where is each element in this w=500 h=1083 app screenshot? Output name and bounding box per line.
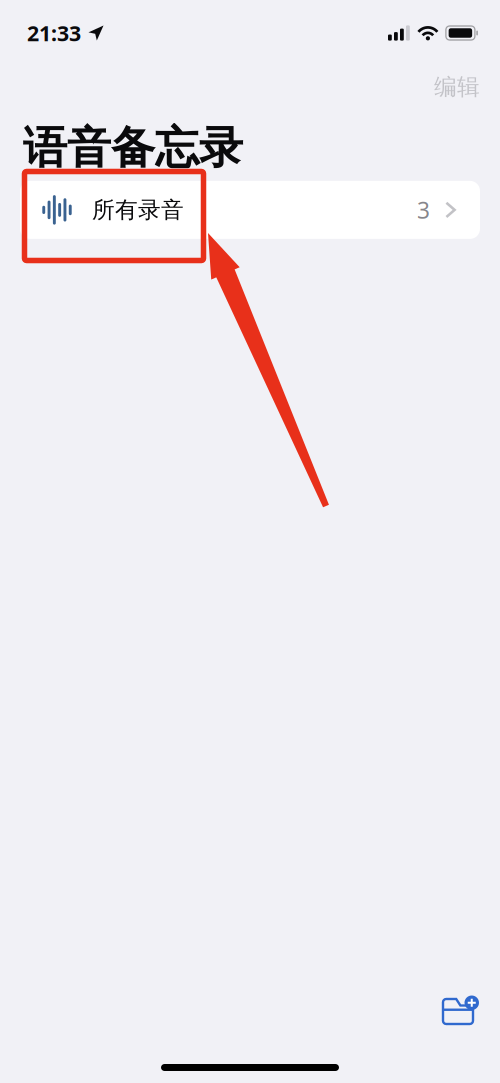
button[interactable]: 编辑 (414, 66, 500, 108)
button[interactable]: New Folder (428, 985, 495, 1034)
button[interactable]: 所有录音 (20, 181, 480, 239)
staticText: 语音备忘录 (23, 121, 243, 175)
staticText: 3 (417, 195, 430, 225)
staticText: 21:33 (27, 19, 81, 47)
staticText: 编辑 (434, 73, 480, 101)
staticText: 所有录音 (92, 196, 184, 224)
